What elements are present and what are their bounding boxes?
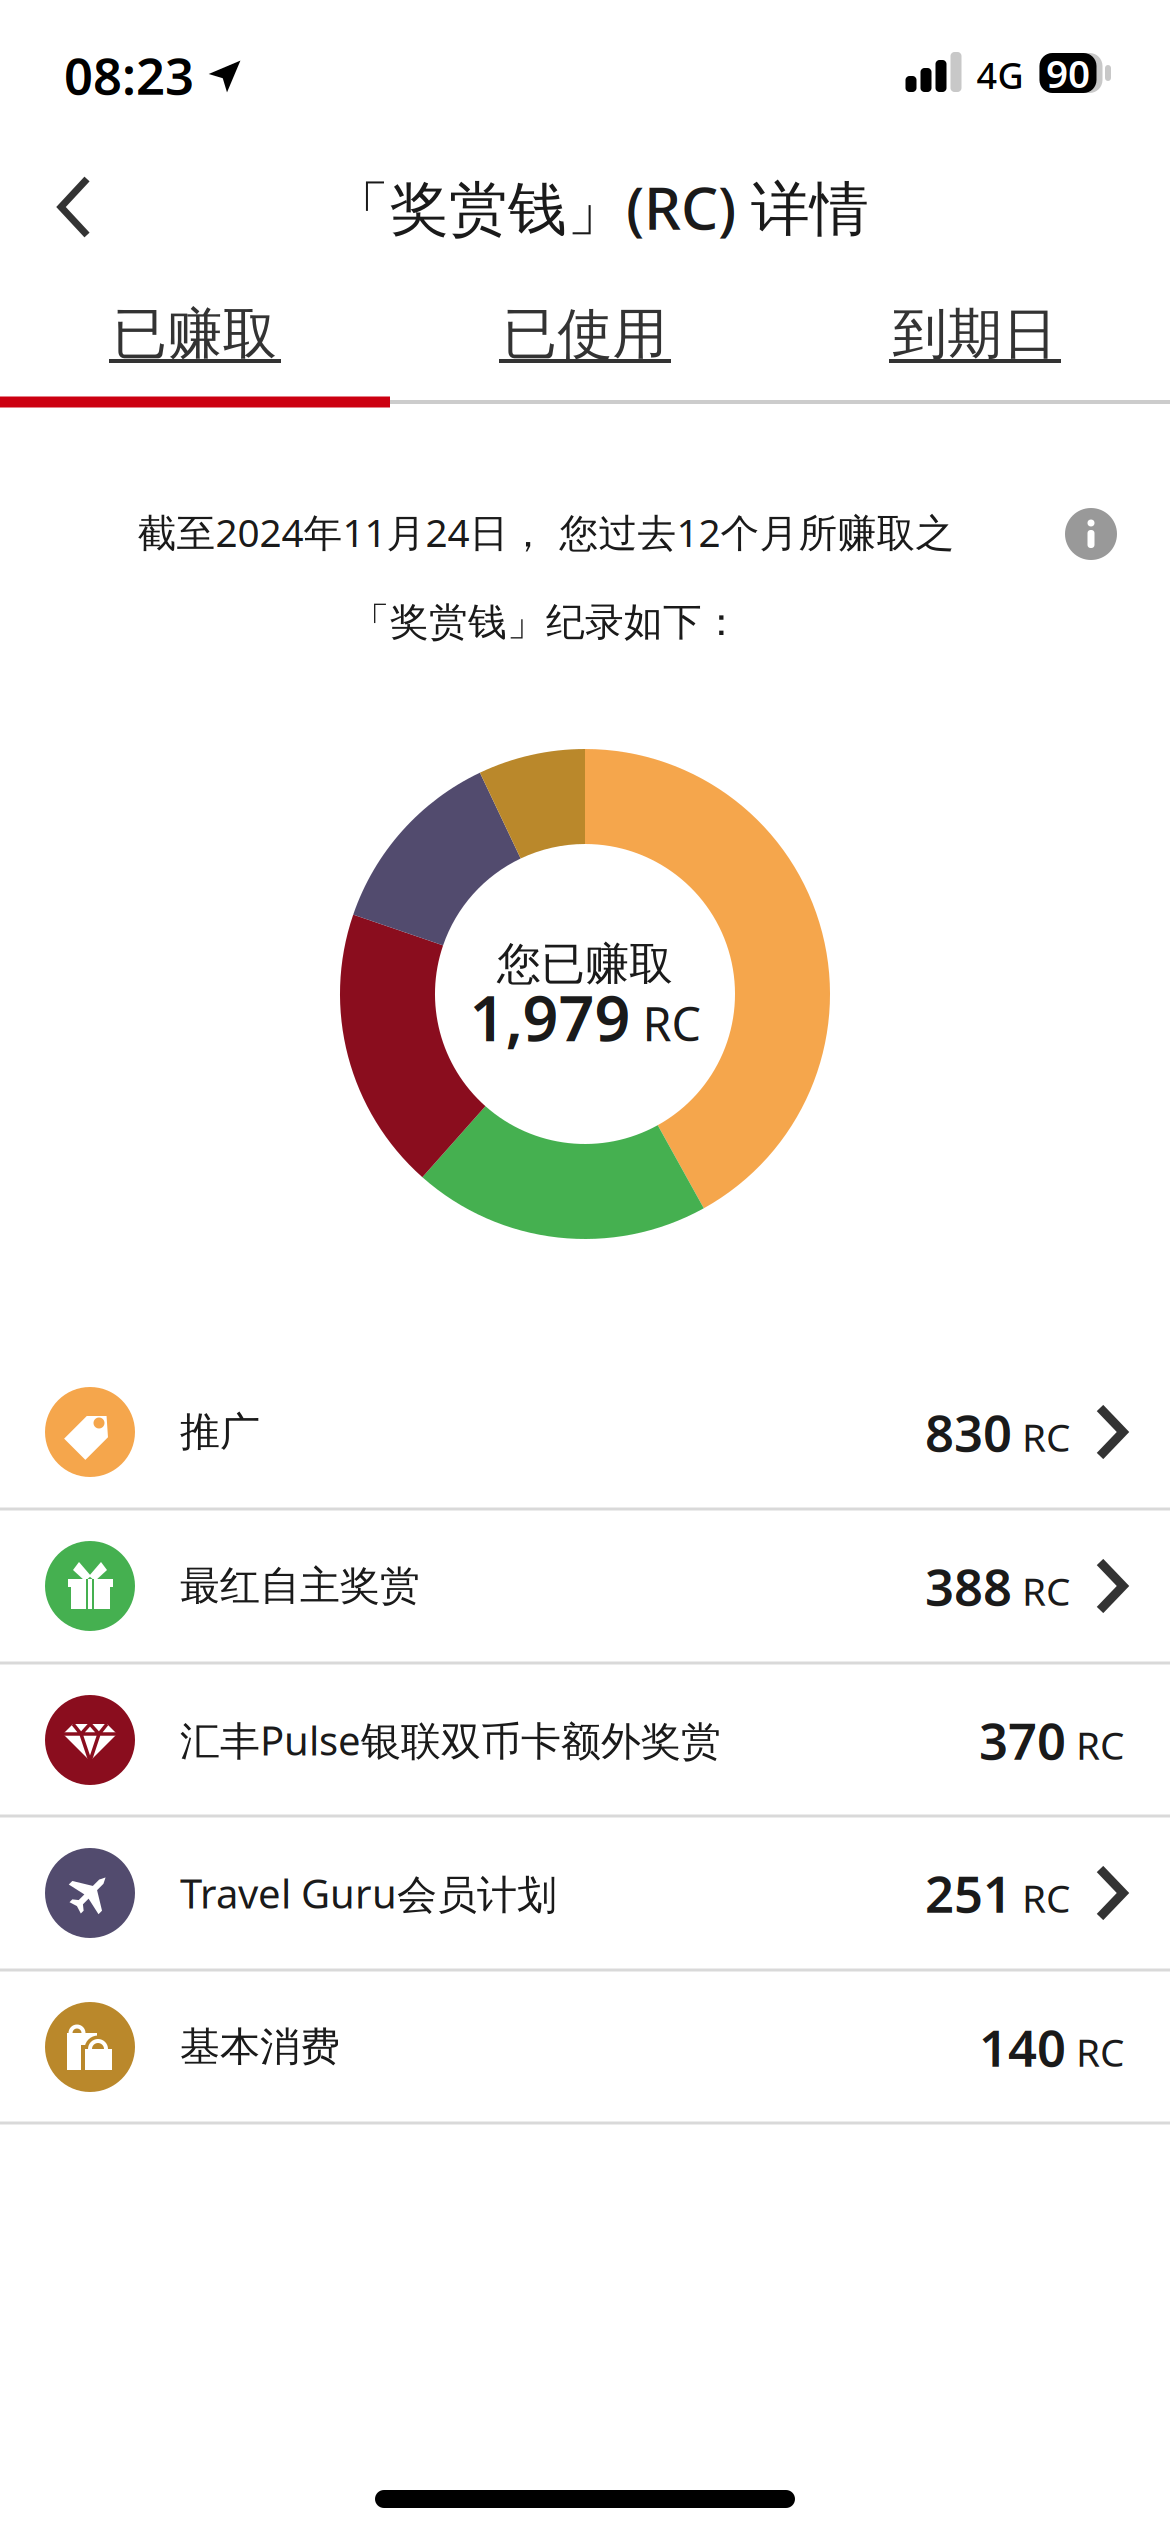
staticText: 251 RC [925,1859,1070,1927]
button[interactable]: 到期日 [780,294,1170,374]
button[interactable]: 汇丰Pulse银联双币卡额外奖赏 [0,1665,1170,1814]
staticText: 「奖赏钱」(RC) 详情 [331,168,869,246]
staticText: 「奖赏钱」纪录如下： [351,598,741,646]
staticText: 1,979 RC [469,975,700,1059]
staticText: 830 RC [925,1398,1070,1466]
staticText: Travel Guru会员计划 [180,1866,557,1920]
staticText: 370 RC [979,1706,1124,1774]
staticText: 到期日 [892,300,1057,367]
button[interactable]: 最红自主奖赏 [0,1511,1170,1660]
staticText: 基本消费 [180,2022,340,2071]
staticText: 最红自主奖赏 [180,1561,420,1610]
button[interactable]: 已使用 [390,294,780,374]
button[interactable]: 基本消费 [0,1972,1170,2121]
staticText: 90 [1046,47,1090,99]
staticText: 您已赚取 [497,937,673,991]
staticText: 截至2024年11月24日， 您过去12个月所赚取之 [137,506,954,558]
button[interactable]: 推广 [0,1357,1170,1506]
button[interactable] [1065,508,1117,560]
staticText: 推广 [180,1407,260,1456]
button[interactable]: 已赚取 [0,294,390,374]
staticText: 140 RC [979,2013,1124,2081]
button[interactable] [57,169,97,245]
staticText: 已赚取 [112,300,277,367]
staticText: 4G [976,51,1023,99]
staticText: 388 RC [925,1552,1070,1620]
staticText: 08:23 [64,41,194,109]
button[interactable]: Travel Guru会员计划 [0,1818,1170,1967]
staticText: 已使用 [502,300,667,367]
staticText: 汇丰Pulse银联双币卡额外奖赏 [180,1713,721,1766]
